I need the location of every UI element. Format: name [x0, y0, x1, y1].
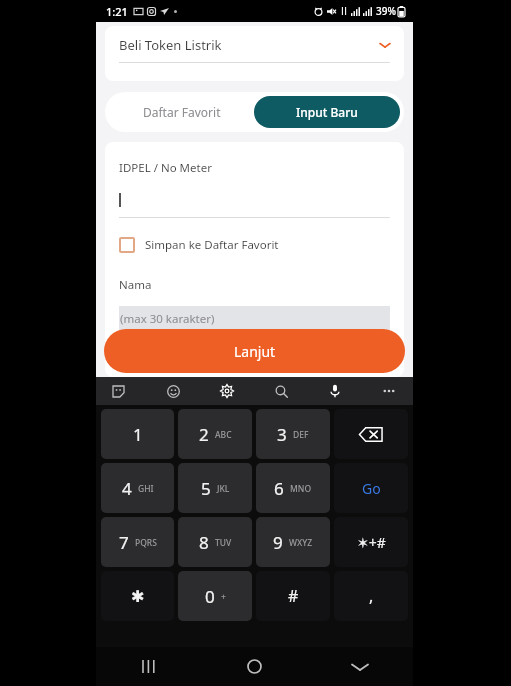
- button[interactable]: Input Baru: [254, 96, 400, 128]
- button[interactable]: Backspace: [334, 409, 408, 459]
- staticText: 8: [199, 531, 209, 554]
- button[interactable]: 3: [256, 409, 330, 459]
- button[interactable]: Emoji: [161, 379, 185, 403]
- staticText: Go: [362, 479, 381, 498]
- staticText: GHI: [138, 483, 154, 495]
- button[interactable]: ,: [334, 571, 408, 621]
- button[interactable]: Recents: [96, 647, 201, 686]
- staticText: ✱: [131, 587, 145, 606]
- button[interactable]: 9: [256, 517, 330, 567]
- staticText: 3: [277, 423, 287, 446]
- button[interactable]: Lanjut: [104, 329, 405, 373]
- button[interactable]: 4: [101, 463, 174, 513]
- button[interactable]: Settings: [215, 379, 239, 403]
- staticText: (max 30 karakter): [120, 311, 215, 327]
- staticText: PQRS: [135, 537, 157, 549]
- staticText: 4: [122, 477, 132, 500]
- staticText: Input Baru: [296, 104, 358, 120]
- staticText: 0: [205, 585, 215, 608]
- button[interactable]: Hide keyboard: [307, 647, 413, 686]
- staticText: +: [221, 591, 226, 603]
- button[interactable]: Daftar Favorit: [109, 96, 254, 128]
- staticText: Nama: [119, 277, 152, 293]
- staticText: TUV: [215, 537, 232, 549]
- staticText: WXYZ: [289, 537, 313, 549]
- button[interactable]: 0: [178, 571, 252, 621]
- other: Expand: [380, 40, 390, 50]
- staticText: 1:21: [106, 4, 128, 19]
- button[interactable]: 2: [178, 409, 252, 459]
- staticText: MNO: [290, 483, 312, 495]
- button[interactable]: 1: [101, 409, 174, 459]
- button[interactable]: 8: [178, 517, 252, 567]
- button[interactable]: Simpan ke Daftar Favorit: [119, 237, 279, 253]
- button[interactable]: #: [256, 571, 330, 621]
- button[interactable]: ✱: [101, 571, 174, 621]
- button[interactable]: 6: [256, 463, 330, 513]
- button[interactable]: Home: [201, 647, 307, 686]
- button[interactable]: Beli Token Listrik: [119, 36, 390, 54]
- staticText: ,: [369, 585, 374, 607]
- staticText: IDPEL / No Meter: [119, 160, 212, 176]
- button[interactable]: 5: [178, 463, 252, 513]
- staticText: 1: [133, 423, 143, 446]
- button[interactable]: Go: [334, 463, 408, 513]
- staticText: DEF: [293, 429, 309, 441]
- staticText: 2: [199, 423, 209, 446]
- staticText: Lanjut: [234, 342, 276, 361]
- button[interactable]: Sticker: [106, 379, 130, 403]
- staticText: 39%: [376, 4, 396, 18]
- button[interactable]: Search: [269, 379, 293, 403]
- staticText: 5: [201, 477, 211, 500]
- staticText: 6: [274, 477, 284, 500]
- staticText: Daftar Favorit: [143, 104, 221, 120]
- staticText: ✶+#: [357, 533, 386, 552]
- staticText: 9: [273, 531, 283, 554]
- staticText: Beli Token Listrik: [119, 36, 222, 54]
- button[interactable]: Voice input: [323, 379, 347, 403]
- staticText: 7: [119, 531, 129, 554]
- staticText: Simpan ke Daftar Favorit: [145, 237, 279, 253]
- staticText: JKL: [217, 483, 230, 495]
- button[interactable]: 7: [101, 517, 174, 567]
- button[interactable]: More options: [377, 379, 401, 403]
- staticText: #: [288, 585, 299, 607]
- staticText: ABC: [215, 429, 232, 441]
- button[interactable]: ✶+#: [334, 517, 408, 567]
